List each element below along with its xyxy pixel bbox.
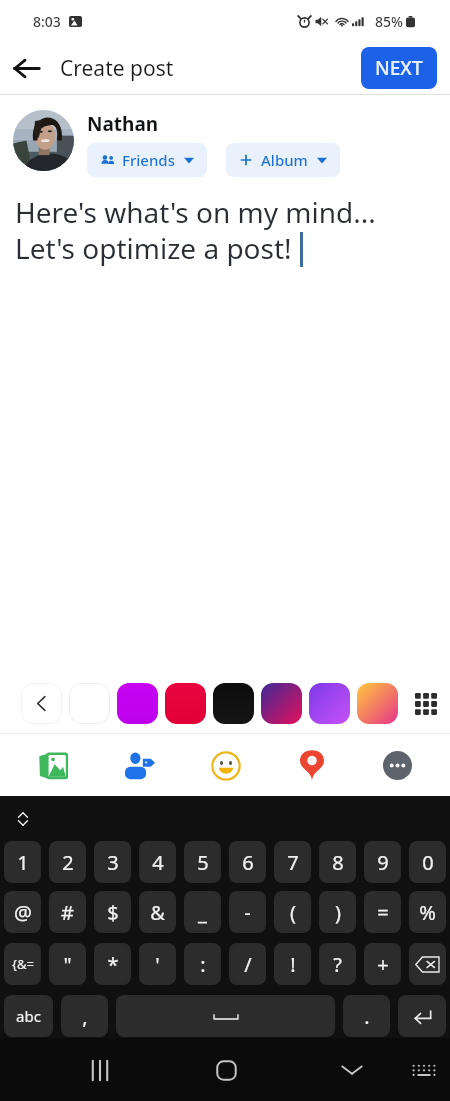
staticText: Album — [261, 150, 308, 170]
button[interactable]: abc — [4, 995, 53, 1037]
button[interactable]: ? — [319, 943, 356, 985]
staticText: Friends — [122, 150, 175, 170]
button[interactable]: Album — [226, 143, 340, 177]
staticText: 1 — [17, 849, 29, 876]
button[interactable]: * — [94, 943, 131, 985]
staticText: ) — [335, 899, 341, 926]
button[interactable]: % — [409, 891, 446, 933]
staticText: 7 — [287, 849, 299, 876]
button[interactable]: . — [343, 995, 390, 1037]
staticText: 6 — [242, 849, 254, 876]
button[interactable]: Background colour — [69, 683, 110, 724]
button[interactable]: {&= — [4, 943, 41, 985]
staticText: Create post — [60, 54, 174, 83]
button[interactable]: - — [229, 891, 266, 933]
button[interactable]: ' — [139, 943, 176, 985]
button[interactable]: Enter — [398, 995, 446, 1037]
staticText: " — [63, 951, 72, 978]
button[interactable]: 1 — [4, 841, 41, 883]
button[interactable]: 8 — [319, 841, 356, 883]
button[interactable]: Background colour — [213, 683, 254, 724]
staticText: {&= — [12, 955, 34, 973]
button[interactable]: Photo — [30, 742, 77, 789]
button[interactable]: 6 — [229, 841, 266, 883]
button[interactable]: 9 — [364, 841, 401, 883]
staticText: @ — [14, 899, 32, 926]
staticText: / — [244, 951, 252, 978]
button[interactable]: Background colour — [117, 683, 158, 724]
staticText: ! — [290, 951, 296, 978]
staticText: 3 — [107, 849, 119, 876]
staticText: * — [107, 951, 119, 978]
button[interactable] — [13, 110, 74, 171]
button[interactable]: Background colour — [309, 683, 350, 724]
button[interactable]: & — [139, 891, 176, 933]
staticText: % — [419, 899, 436, 926]
staticText: . — [364, 1003, 370, 1030]
staticText: & — [150, 899, 165, 926]
button[interactable]: ( — [274, 891, 311, 933]
staticText: , — [82, 1003, 88, 1030]
button[interactable]: Home — [202, 1046, 250, 1094]
button[interactable]: Check in — [288, 742, 335, 789]
staticText: 9 — [377, 849, 389, 876]
button[interactable]: 4 — [139, 841, 176, 883]
button[interactable]: Background colour — [165, 683, 206, 724]
button[interactable]: = — [364, 891, 401, 933]
staticText: 5 — [197, 849, 209, 876]
staticText: 8 — [332, 849, 344, 876]
staticText: 0 — [422, 849, 434, 876]
staticText: 2 — [62, 849, 74, 876]
button[interactable]: Switch keyboard — [400, 1046, 448, 1094]
button[interactable]: 7 — [274, 841, 311, 883]
button[interactable]: 5 — [184, 841, 221, 883]
staticText: Here's what's on my mind... Let's optimi… — [15, 193, 376, 267]
button[interactable]: 2 — [49, 841, 86, 883]
staticText: $ — [107, 899, 119, 926]
button[interactable]: Background colour — [261, 683, 302, 724]
staticText: Nathan — [87, 111, 159, 137]
staticText: abc — [16, 1006, 41, 1026]
button[interactable]: " — [49, 943, 86, 985]
staticText: 8:03 — [33, 12, 61, 31]
button[interactable]: , — [61, 995, 108, 1037]
button[interactable]: _ — [184, 891, 221, 933]
staticText: ( — [290, 899, 296, 926]
button[interactable]: Background colour — [357, 683, 398, 724]
button[interactable]: Back — [5, 47, 47, 89]
staticText: - — [244, 899, 251, 926]
staticText: NEXT — [375, 55, 423, 81]
staticText: : — [200, 951, 206, 978]
button[interactable]: Feeling — [202, 742, 249, 789]
button[interactable]: : — [184, 943, 221, 985]
button[interactable]: @ — [4, 891, 41, 933]
staticText: 85% — [375, 12, 403, 31]
button[interactable]: Tag people — [116, 742, 163, 789]
staticText: ? — [333, 951, 342, 978]
button[interactable]: Resize keyboard — [10, 806, 36, 832]
staticText: # — [61, 899, 74, 926]
staticText: _ — [198, 899, 207, 926]
button[interactable]: More options — [374, 742, 421, 789]
button[interactable]: ! — [274, 943, 311, 985]
staticText: = — [377, 899, 389, 926]
button[interactable]: + — [364, 943, 401, 985]
button[interactable]: / — [229, 943, 266, 985]
button[interactable]: Previous colours — [21, 683, 62, 724]
button[interactable]: 3 — [94, 841, 131, 883]
button[interactable]: Hide keyboard — [328, 1046, 376, 1094]
staticText: ' — [155, 951, 160, 978]
button[interactable]: Friends — [87, 143, 207, 177]
button[interactable]: Recents — [76, 1046, 124, 1094]
button[interactable]: ) — [319, 891, 356, 933]
button[interactable]: Backspace — [409, 943, 446, 985]
button[interactable]: NEXT — [361, 47, 437, 89]
button[interactable]: 0 — [409, 841, 446, 883]
button[interactable]: Space — [116, 995, 335, 1037]
button[interactable]: # — [49, 891, 86, 933]
staticText: 4 — [152, 849, 164, 876]
button[interactable]: $ — [94, 891, 131, 933]
staticText: + — [377, 951, 389, 978]
button[interactable]: More backgrounds — [405, 683, 446, 724]
